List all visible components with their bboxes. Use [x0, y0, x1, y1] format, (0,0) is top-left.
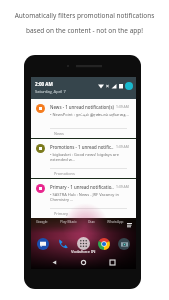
- staticText: Primary: [54, 211, 69, 216]
- staticText: Promotions - 1 unread notific..: [50, 144, 114, 150]
- staticText: Promotions: [54, 171, 75, 176]
- staticText: 1:39 AM: [116, 104, 129, 109]
- staticText: based on the content - not on the app!: [0, 26, 169, 35]
- button[interactable]: Primary - 1 unread notificatio..: [31, 179, 136, 218]
- staticText: Saturday, April 7: [35, 89, 66, 94]
- staticText: Automatically filters promotional notifi…: [0, 11, 169, 20]
- button[interactable]: Back: [49, 257, 60, 268]
- staticText: Google: [36, 219, 48, 224]
- button[interactable]: Home: [78, 257, 89, 268]
- button[interactable]: Messages: [37, 238, 49, 250]
- button[interactable]: Recents: [107, 257, 118, 268]
- staticText: Vodafone IN: [71, 249, 96, 255]
- staticText: • bigbasket : Good news! bigdays are ext…: [50, 152, 132, 162]
- staticText: ×: [106, 83, 109, 90]
- staticText: 1:39 AM: [116, 144, 129, 149]
- button[interactable]: All apps: [77, 237, 90, 250]
- button[interactable]: Promotions - 1 unread notific..: [31, 139, 136, 178]
- staticText: Primary - 1 unread notificatio..: [50, 184, 114, 190]
- staticText: News - 1 unread notification(s): [50, 104, 114, 110]
- staticText: Duo: [88, 219, 95, 224]
- staticText: • SASTRA Hub : News - JRF Vacancy in Che…: [50, 192, 132, 202]
- button[interactable]: Account: [125, 82, 133, 90]
- button[interactable]: Camera: [118, 238, 130, 250]
- button[interactable]: Chrome: [98, 238, 110, 250]
- staticText: Play Music: [60, 219, 77, 224]
- staticText: News: [54, 131, 64, 136]
- button[interactable]: Menu: [127, 223, 132, 228]
- staticText: 2:00 AM: [35, 81, 53, 87]
- staticText: 1:39 AM: [116, 184, 129, 189]
- staticText: WhatsApp: [107, 219, 124, 224]
- staticText: • NewsPoint : நாட்டில் இரண்டாம் மரியாதை.…: [50, 112, 129, 117]
- button[interactable]: News - 1 unread notification(s): [31, 99, 136, 138]
- button[interactable]: Phone: [57, 238, 69, 250]
